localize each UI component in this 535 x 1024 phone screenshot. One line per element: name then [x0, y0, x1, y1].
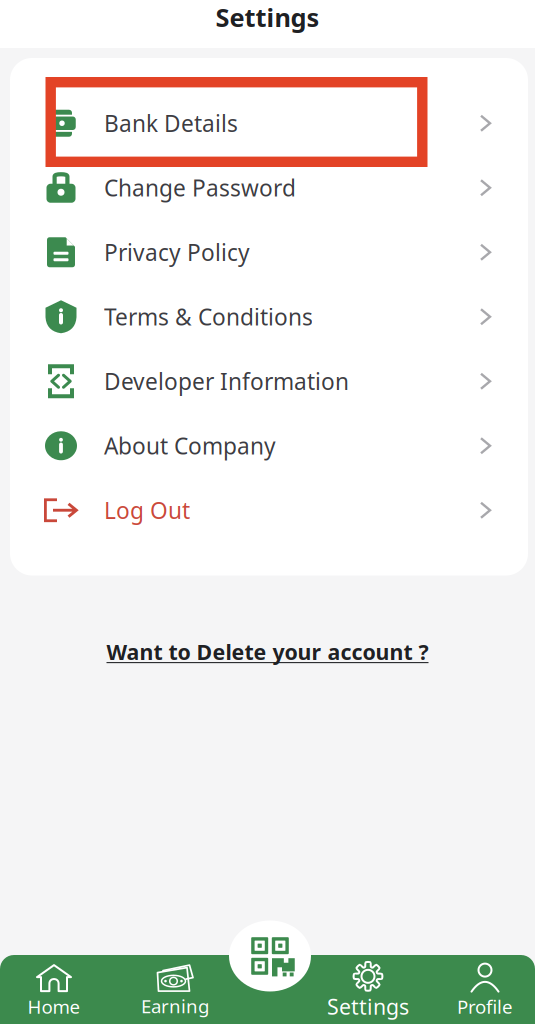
button[interactable]: Earning — [120, 964, 230, 1018]
staticText: Settings — [327, 992, 409, 1021]
button[interactable]: Change Password — [10, 155, 528, 220]
button[interactable]: Home — [0, 963, 109, 1019]
staticText: Log Out — [104, 495, 190, 525]
staticText: Bank Details — [104, 108, 238, 138]
button[interactable]: Terms & Conditions — [10, 284, 528, 349]
staticText: About Company — [104, 431, 276, 461]
staticText: Home — [27, 994, 80, 1019]
button[interactable]: Want to Delete your account ? — [106, 627, 428, 676]
staticText: Want to Delete your account ? — [106, 637, 428, 666]
staticText: Developer Information — [104, 366, 349, 396]
button[interactable]: Developer Information — [10, 349, 528, 413]
button[interactable]: Settings — [313, 961, 423, 1021]
staticText: Privacy Policy — [104, 237, 250, 267]
staticText: Settings — [215, 0, 319, 34]
button[interactable]: About Company — [10, 413, 528, 478]
button[interactable]: Scan QR code — [225, 911, 315, 1001]
button[interactable]: Log Out — [10, 478, 528, 542]
button[interactable]: Profile — [430, 963, 535, 1019]
button[interactable]: Bank Details — [10, 91, 528, 155]
button[interactable]: Privacy Policy — [10, 220, 528, 284]
staticText: Earning — [141, 994, 209, 1018]
staticText: Profile — [457, 994, 513, 1019]
staticText: Change Password — [104, 173, 296, 203]
staticText: Terms & Conditions — [104, 302, 313, 332]
